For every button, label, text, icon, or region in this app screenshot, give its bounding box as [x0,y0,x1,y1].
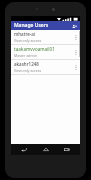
button[interactable]: Add user [70,22,78,30]
button[interactable]: mhatre-ai [11,30,80,45]
button[interactable]: akashr1248 [11,60,80,75]
button[interactable]: taakamvvoamail01 [11,45,80,60]
staticText: View only access [14,68,42,73]
staticText: akashr1248 [14,61,39,67]
staticText: taakamvvoamail01 [14,46,55,52]
staticText: mhatre-ai [14,31,36,37]
button[interactable]: Home [38,144,54,155]
staticText: Manage Users [14,22,49,29]
button[interactable]: Back [16,144,32,155]
staticText: Master admin [14,53,37,58]
staticText: View only access [14,38,42,43]
button[interactable]: Recent apps [59,144,75,155]
